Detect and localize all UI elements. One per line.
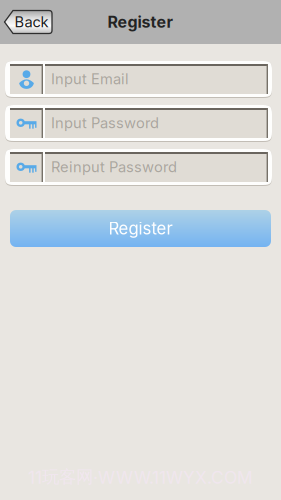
button[interactable]: Input Email [5, 61, 272, 98]
button[interactable]: Back [4, 10, 52, 33]
staticText: 11玩客网·WWW.11WYX.COM [28, 466, 253, 488]
button[interactable]: Reinput Password [5, 149, 272, 186]
staticText: Register [108, 218, 172, 239]
staticText: Back [15, 13, 49, 31]
staticText: Reinput Password [51, 158, 177, 176]
button[interactable]: Input Password [5, 105, 272, 142]
button[interactable]: Register [0, 210, 281, 247]
staticText: Register [107, 12, 173, 32]
staticText: Input Password [51, 114, 159, 132]
staticText: Input Email [51, 70, 129, 88]
